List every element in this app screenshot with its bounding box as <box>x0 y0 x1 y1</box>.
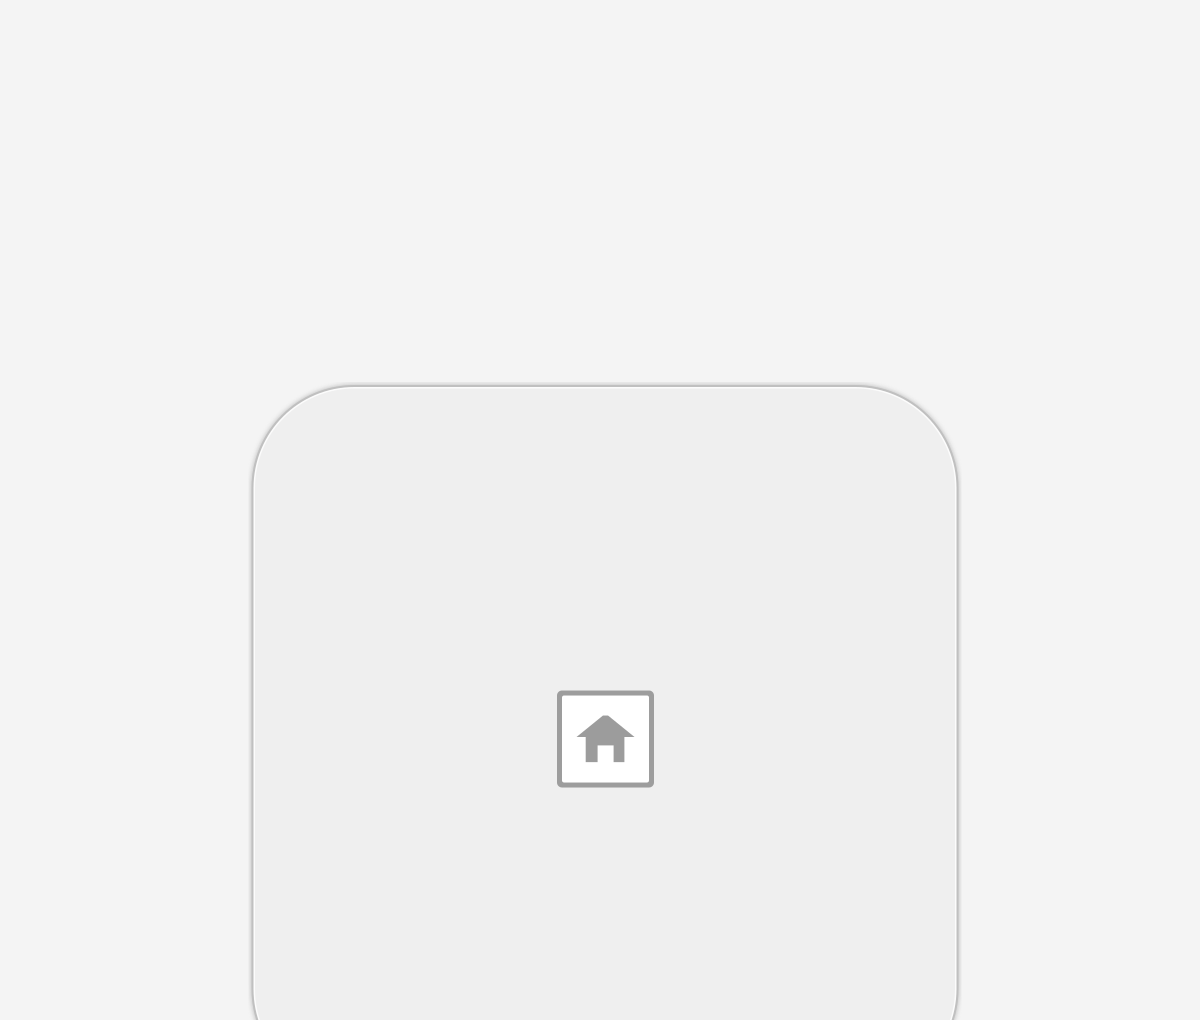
button[interactable]: Open item <box>252 386 957 1020</box>
